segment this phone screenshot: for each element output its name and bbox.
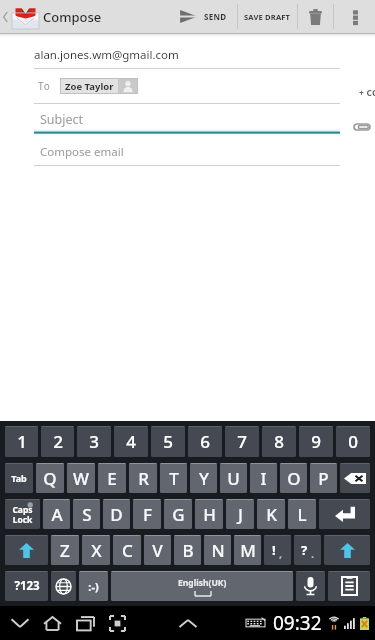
staticText: F — [143, 503, 152, 526]
staticText: ! — [272, 541, 276, 559]
button[interactable]: SEND — [173, 0, 237, 33]
button[interactable]: H — [195, 499, 223, 529]
staticText: 7 — [237, 430, 247, 453]
button[interactable]: V — [144, 535, 171, 565]
button[interactable]: I — [250, 463, 277, 493]
staticText: Subject — [40, 111, 84, 128]
button[interactable]: U — [220, 463, 247, 493]
button[interactable]: G — [164, 499, 192, 529]
button[interactable] — [328, 571, 370, 601]
button[interactable]: 1 — [5, 426, 38, 457]
button[interactable] — [319, 499, 370, 529]
button[interactable]: 5 — [151, 426, 185, 457]
staticText: S — [82, 503, 92, 526]
button[interactable]: J — [226, 499, 254, 529]
button[interactable]: E — [98, 463, 126, 493]
button[interactable]: N — [204, 535, 231, 565]
button[interactable]: D — [103, 499, 130, 529]
button[interactable]: X — [82, 535, 110, 565]
button[interactable]: Delete draft — [298, 0, 333, 33]
button[interactable]: K — [257, 499, 285, 529]
button[interactable]: 0 — [336, 426, 370, 457]
button[interactable]: + CC/BCC — [335, 87, 375, 99]
staticText: M — [240, 539, 256, 562]
button[interactable] — [5, 535, 48, 565]
staticText: 5 — [163, 430, 173, 453]
button[interactable]: 7 — [225, 426, 259, 457]
button[interactable]: English(UK) — [111, 571, 293, 601]
staticText: O — [287, 467, 301, 490]
staticText: 9 — [311, 430, 321, 453]
button[interactable]: 9 — [299, 426, 333, 457]
button[interactable]: 2 — [41, 426, 74, 457]
button[interactable]: Zoe Taylor — [60, 78, 138, 94]
staticText: I — [260, 467, 267, 490]
button[interactable]: O — [280, 463, 307, 493]
staticText: D — [110, 503, 123, 526]
staticText: Compose email — [40, 144, 124, 160]
staticText: G — [172, 503, 185, 526]
button[interactable]: Y — [190, 463, 217, 493]
staticText: 8 — [274, 430, 284, 453]
button[interactable]: R — [129, 463, 157, 493]
button[interactable]: A — [43, 499, 70, 529]
staticText: 0 — [348, 430, 358, 453]
button[interactable]: Q — [36, 463, 64, 493]
button[interactable]: 3 — [77, 426, 111, 457]
staticText: 2 — [53, 430, 63, 453]
staticText: SEND — [204, 11, 227, 22]
button[interactable]: 8 — [262, 426, 296, 457]
button[interactable] — [51, 571, 76, 601]
button[interactable]: C — [113, 535, 141, 565]
staticText: + CC/BCC — [359, 87, 375, 99]
staticText: 4 — [126, 430, 136, 453]
button[interactable]: :-) — [79, 571, 108, 601]
button[interactable]: ! — [264, 535, 291, 565]
staticText: H — [203, 503, 216, 526]
button[interactable]: S — [73, 499, 100, 529]
button[interactable]: Home — [38, 606, 67, 640]
button[interactable]: Z — [51, 535, 79, 565]
button[interactable]: Recent apps — [71, 606, 100, 640]
staticText: 09:32 — [273, 610, 322, 636]
staticText: E — [107, 467, 117, 490]
staticText: Q — [43, 467, 57, 490]
button[interactable]: ? — [294, 535, 321, 565]
button[interactable]: ?123 — [5, 571, 48, 601]
staticText: . — [311, 546, 315, 561]
button[interactable]: Hide keyboard — [173, 606, 203, 640]
button[interactable]: More options — [334, 0, 375, 33]
staticText: To — [38, 79, 51, 93]
staticText: V — [152, 539, 163, 562]
button[interactable]: L — [288, 499, 316, 529]
staticText: B — [182, 539, 194, 562]
button[interactable]: Attach file — [353, 123, 375, 131]
button[interactable]: W — [67, 463, 95, 493]
staticText: 1 — [17, 430, 27, 453]
button[interactable]: M — [234, 535, 261, 565]
staticText: R — [138, 467, 149, 490]
button[interactable] — [296, 571, 325, 601]
button[interactable]: P — [310, 463, 337, 493]
button[interactable]: Compose — [0, 0, 108, 33]
button[interactable]: F — [133, 499, 161, 529]
staticText: W — [73, 467, 89, 490]
button[interactable]: 4 — [114, 426, 148, 457]
staticText: A — [51, 503, 63, 526]
button[interactable]: SAVE DRAFT — [238, 0, 297, 33]
button[interactable]: Tab — [5, 463, 33, 493]
button[interactable] — [340, 463, 370, 493]
staticText: Z — [60, 539, 70, 562]
staticText: Zoe Taylor — [65, 80, 114, 93]
button[interactable]: T — [160, 463, 187, 493]
button[interactable]: 6 — [188, 426, 222, 457]
staticText: Tab — [11, 472, 27, 484]
staticText: 6 — [200, 430, 210, 453]
button[interactable]: Caps Lock — [5, 499, 40, 529]
button[interactable]: B — [174, 535, 201, 565]
button[interactable] — [324, 535, 370, 565]
button[interactable]: Back — [6, 606, 34, 640]
button[interactable]: Screenshot — [104, 606, 131, 640]
staticText: L — [297, 503, 307, 526]
staticText: alan.jones.wm@gmail.com — [34, 47, 179, 63]
